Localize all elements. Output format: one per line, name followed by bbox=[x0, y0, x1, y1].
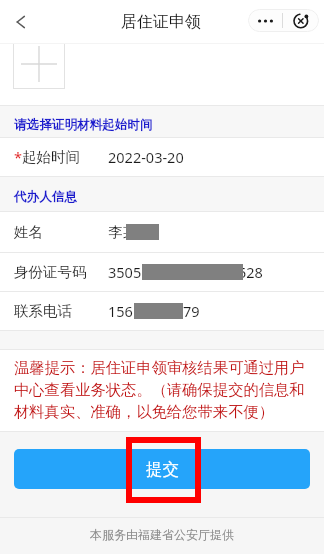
staticText: 温馨提示：居住证申领审核结果可通过用户 bbox=[14, 358, 305, 377]
button[interactable]: 姓名 bbox=[0, 212, 324, 252]
staticText: 材料真实、准确，以免给您带来不便） bbox=[14, 402, 275, 421]
button[interactable]: 联系电话 bbox=[0, 292, 324, 330]
staticText: 请选择证明材料起始时间 bbox=[14, 117, 153, 133]
staticText: * bbox=[14, 147, 22, 167]
staticText: 李某某 bbox=[108, 223, 152, 241]
staticText: 身份证号码 bbox=[14, 263, 87, 281]
staticText: 提交 bbox=[146, 459, 179, 480]
staticText: 起始时间 bbox=[22, 148, 80, 166]
button[interactable]: 身份证号码 bbox=[0, 253, 324, 291]
staticText: 联系电话 bbox=[14, 302, 72, 320]
staticText: 居住证申领 bbox=[121, 12, 201, 32]
button[interactable]: 提交 bbox=[14, 449, 310, 489]
staticText: 156 bbox=[108, 301, 133, 321]
button[interactable]: More options bbox=[248, 9, 282, 32]
button[interactable]: Add photo bbox=[13, 44, 65, 89]
button[interactable]: Close bbox=[283, 9, 319, 32]
staticText: 姓名 bbox=[14, 223, 43, 241]
staticText: 2022-03-20 bbox=[108, 147, 184, 167]
staticText: 本服务由福建省公安厅提供 bbox=[90, 527, 234, 542]
button[interactable]: Back bbox=[6, 7, 36, 37]
button[interactable]: * bbox=[0, 138, 324, 176]
staticText: 中心查看业务状态。（请确保提交的信息和 bbox=[14, 380, 305, 399]
staticText: 79 bbox=[183, 301, 200, 321]
staticText: 3505 bbox=[108, 262, 142, 282]
staticText: 代办人信息 bbox=[14, 189, 77, 205]
staticText: 528 bbox=[238, 262, 263, 282]
